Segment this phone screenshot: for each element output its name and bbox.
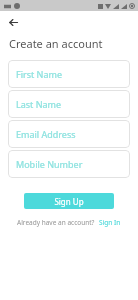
staticText: Last Name <box>16 98 62 110</box>
staticText: Already have an account? <box>17 218 95 227</box>
button[interactable]: Sign Up <box>24 193 114 209</box>
staticText: Sign Up <box>54 196 84 207</box>
staticText: Create an account <box>9 36 103 51</box>
button[interactable]: Mobile Number <box>8 150 130 178</box>
button[interactable]: Email Address <box>8 120 130 148</box>
staticText: Email Address <box>16 128 76 140</box>
button[interactable]: First Name <box>8 60 130 88</box>
button[interactable]: Back <box>5 14 21 30</box>
staticText: First Name <box>16 68 62 80</box>
button[interactable]: Sign In <box>98 217 122 228</box>
staticText: Mobile Number <box>16 158 83 170</box>
staticText: Sign In <box>99 218 121 227</box>
button[interactable]: Last Name <box>8 90 130 118</box>
